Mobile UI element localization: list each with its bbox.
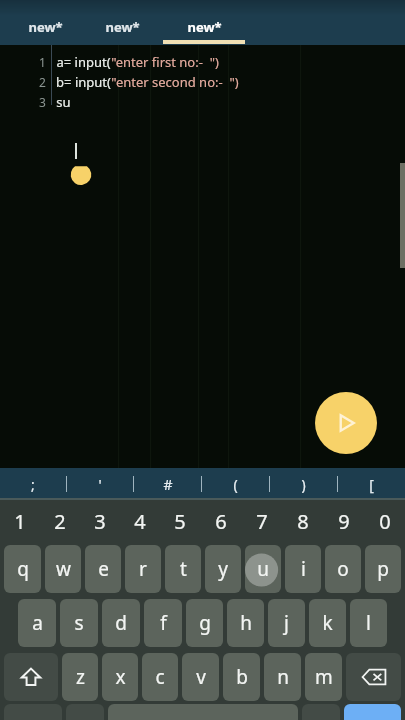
staticText: ;: [31, 475, 35, 494]
staticText: 8: [297, 508, 309, 535]
staticText: a: [32, 610, 43, 636]
button[interactable]: z: [62, 653, 98, 701]
staticText: y: [218, 556, 228, 582]
staticText: e: [98, 556, 109, 582]
staticText: f: [160, 610, 167, 636]
staticText: b= input(: [56, 73, 111, 91]
staticText: su: [56, 93, 71, 111]
button[interactable]: b: [223, 653, 260, 701]
button[interactable]: x: [102, 653, 138, 701]
button[interactable]: 8: [282, 500, 323, 542]
button[interactable]: 7: [241, 500, 282, 542]
button[interactable]: k: [309, 599, 346, 647]
staticText: ': [98, 475, 102, 494]
button[interactable]: 0: [364, 500, 405, 542]
staticText: i: [301, 556, 306, 582]
button[interactable]: Enter: [344, 704, 401, 720]
button[interactable]: m: [305, 653, 342, 701]
button[interactable]: d: [102, 599, 140, 647]
button[interactable]: c: [142, 653, 178, 701]
button[interactable]: ;: [0, 468, 66, 500]
staticText: x: [115, 664, 126, 690]
staticText: t: [180, 556, 187, 582]
staticText: z: [76, 664, 85, 690]
staticText: new*: [105, 18, 140, 36]
button[interactable]: u: [245, 545, 281, 593]
button[interactable]: 5: [160, 500, 200, 542]
button[interactable]: Run: [315, 392, 377, 454]
staticText: [: [369, 475, 374, 494]
button[interactable]: h: [227, 599, 264, 647]
button[interactable]: o: [325, 545, 361, 593]
staticText: r: [139, 556, 147, 582]
staticText: 9: [338, 508, 350, 535]
staticText: 0: [379, 508, 391, 535]
staticText: a= input(: [56, 53, 111, 71]
staticText: (: [233, 475, 238, 494]
button[interactable]: new*: [7, 18, 83, 45]
button[interactable]: f: [144, 599, 182, 647]
button[interactable]: 2: [40, 500, 80, 542]
staticText: 2: [39, 74, 46, 90]
button[interactable]: q: [4, 545, 41, 593]
staticText: n: [277, 664, 289, 690]
staticText: p: [377, 556, 389, 582]
staticText: 2: [54, 508, 66, 535]
staticText: new*: [187, 18, 222, 36]
button[interactable]: Shift: [4, 653, 58, 701]
staticText: v: [196, 664, 206, 690]
staticText: new*: [28, 18, 63, 36]
staticText: d: [115, 610, 127, 636]
staticText: w: [56, 556, 71, 582]
staticText: g: [199, 610, 211, 636]
button[interactable]: t: [165, 545, 201, 593]
button[interactable]: new*: [84, 18, 160, 45]
staticText: 3: [94, 508, 106, 535]
staticText: "enter first no:- "): [111, 53, 219, 71]
button[interactable]: 4: [120, 500, 160, 542]
button[interactable]: p: [365, 545, 401, 593]
staticText: h: [240, 610, 252, 636]
button[interactable]: a: [18, 599, 56, 647]
staticText: 7: [256, 508, 268, 535]
button[interactable]: g: [186, 599, 223, 647]
button[interactable]: new*: [166, 18, 242, 45]
button[interactable]: (: [202, 468, 269, 500]
staticText: q: [17, 556, 29, 582]
staticText: l: [366, 610, 371, 636]
button[interactable]: Backspace: [346, 653, 401, 701]
button[interactable]: v: [182, 653, 219, 701]
staticText: m: [315, 664, 333, 690]
staticText: #: [163, 475, 173, 494]
staticText: k: [322, 610, 333, 636]
button[interactable]: ): [270, 468, 337, 500]
button[interactable]: ': [67, 468, 133, 500]
staticText: 1: [39, 54, 46, 70]
button[interactable]: y: [205, 545, 241, 593]
staticText: ): [301, 475, 306, 494]
staticText: 3: [39, 94, 46, 110]
button[interactable]: r: [125, 545, 161, 593]
button[interactable]: s: [60, 599, 98, 647]
button[interactable]: 3: [80, 500, 120, 542]
button[interactable]: #: [134, 468, 201, 500]
button[interactable]: i: [285, 545, 321, 593]
button[interactable]: 9: [323, 500, 364, 542]
staticText: 5: [174, 508, 186, 535]
button[interactable]: n: [264, 653, 301, 701]
button[interactable]: 1: [0, 500, 40, 542]
button[interactable]: 6: [200, 500, 241, 542]
button[interactable]: j: [268, 599, 305, 647]
button[interactable]: l: [350, 599, 387, 647]
staticText: b: [236, 664, 248, 690]
staticText: s: [74, 610, 84, 636]
staticText: 1: [14, 508, 26, 535]
button[interactable]: [: [338, 468, 405, 500]
staticText: o: [337, 556, 349, 582]
button[interactable]: w: [45, 545, 81, 593]
button[interactable]: e: [85, 545, 121, 593]
